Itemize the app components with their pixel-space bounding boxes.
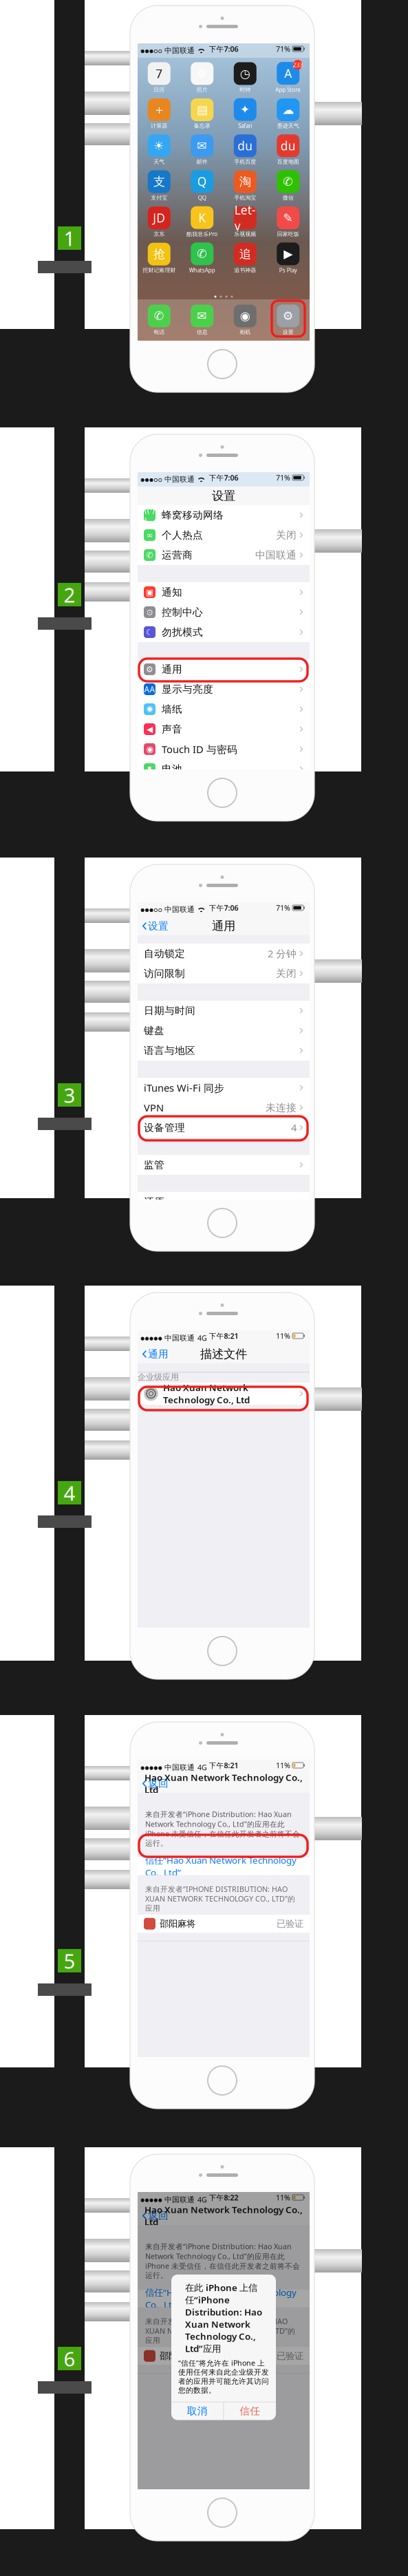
- button[interactable]: 信任“Hao Xuan Network Technology Co., Ltd”: [138, 1857, 310, 1875]
- staticText: 下午8:21: [209, 1331, 238, 1341]
- button[interactable]: JD: [147, 207, 171, 237]
- button[interactable]: ☀: [147, 134, 171, 165]
- button[interactable]: ◉: [138, 739, 310, 759]
- button[interactable]: K: [187, 206, 218, 238]
- staticText: 2 分钟: [268, 947, 297, 960]
- staticText: 蜂窝移动网络: [162, 509, 224, 521]
- button[interactable]: ▤: [190, 98, 215, 129]
- button[interactable]: 监管: [138, 1155, 310, 1175]
- button[interactable]: 设置: [139, 917, 172, 935]
- staticText: 个人热点: [162, 529, 203, 541]
- button[interactable]: ❁: [190, 62, 215, 93]
- button[interactable]: A: [275, 62, 301, 93]
- staticText: ✆: [154, 309, 164, 323]
- button[interactable]: ◉: [233, 305, 257, 335]
- staticText: 下午8:21: [209, 1760, 238, 1770]
- button[interactable]: ☾: [138, 622, 310, 642]
- staticText: 设置: [283, 329, 294, 335]
- button[interactable]: ✆: [189, 242, 215, 274]
- staticText: 电话: [154, 329, 165, 335]
- button[interactable]: 还原: [138, 1192, 310, 1212]
- staticText: 备忘录: [194, 123, 210, 129]
- staticText: 在此 iPhone 上信任“iPhone Distribution: Hao X…: [185, 2281, 262, 2355]
- button[interactable]: ✆: [276, 170, 301, 201]
- button[interactable]: ▮: [138, 759, 310, 779]
- staticText: 信息: [197, 329, 208, 335]
- button[interactable]: 通用: [139, 1345, 172, 1363]
- button[interactable]: 返回: [139, 2206, 172, 2225]
- button[interactable]: ⚙: [138, 659, 310, 679]
- button[interactable]: Hao Xuan Network Technology Co., Ltd: [138, 1383, 310, 1405]
- button[interactable]: Letv: [233, 207, 257, 237]
- button[interactable]: 追: [233, 243, 257, 274]
- button[interactable]: ∞: [138, 525, 310, 545]
- button[interactable]: ✦: [233, 98, 257, 130]
- button[interactable]: ☁: [276, 98, 301, 129]
- button[interactable]: 支: [147, 170, 171, 201]
- staticText: 信任: [240, 2405, 260, 2417]
- button[interactable]: iTunes Wi-Fi 同步: [138, 1078, 310, 1098]
- button[interactable]: Q: [190, 170, 215, 201]
- staticText: Letv: [234, 202, 256, 234]
- staticText: ▣: [146, 588, 153, 597]
- button[interactable]: 返回: [139, 1774, 172, 1793]
- staticText: ⚙: [146, 665, 153, 674]
- button[interactable]: ((·)): [138, 505, 310, 525]
- button[interactable]: ✆: [138, 545, 310, 565]
- staticText: ✆: [283, 175, 293, 188]
- button[interactable]: ▶: [276, 242, 301, 274]
- staticText: 邵阳麻将: [160, 1918, 195, 1929]
- button[interactable]: ✉: [190, 134, 215, 165]
- staticText: 京东: [154, 231, 165, 237]
- staticText: 还原: [144, 1196, 164, 1208]
- button[interactable]: 设备管理: [138, 1118, 310, 1138]
- staticText: ⊙: [146, 607, 153, 617]
- button[interactable]: 信任“Hao Xuan Network Technology Co., Ltd”: [138, 2289, 310, 2307]
- button[interactable]: AA: [138, 679, 310, 699]
- staticText: 3: [64, 1082, 75, 1108]
- button[interactable]: ✎: [276, 207, 301, 237]
- button[interactable]: 键盘: [138, 1021, 310, 1041]
- button[interactable]: ⚙: [276, 305, 301, 335]
- staticText: App Store: [275, 86, 301, 93]
- button[interactable]: ◀: [138, 719, 310, 739]
- staticText: ☾: [146, 627, 153, 637]
- button[interactable]: ▣: [138, 582, 310, 602]
- staticText: 11%: [276, 2193, 290, 2202]
- button[interactable]: 语言与地区: [138, 1041, 310, 1061]
- button[interactable]: 抢: [143, 243, 176, 274]
- staticText: ✺: [146, 705, 153, 714]
- button[interactable]: 淘: [233, 170, 257, 201]
- staticText: 日历: [154, 86, 165, 93]
- staticText: 设置: [148, 920, 169, 932]
- staticText: 追: [239, 247, 251, 261]
- staticText: 通用: [148, 1348, 169, 1360]
- staticText: 企业级应用: [138, 1372, 179, 1382]
- button[interactable]: ✆: [147, 305, 171, 335]
- staticText: 下午7:06: [209, 903, 238, 913]
- button[interactable]: 自动锁定: [138, 944, 310, 964]
- button[interactable]: ◷: [233, 62, 257, 93]
- button[interactable]: du: [233, 134, 257, 165]
- button[interactable]: 日期与时间: [138, 1001, 310, 1021]
- button[interactable]: 信任: [224, 2402, 276, 2420]
- button[interactable]: ✺: [138, 699, 310, 719]
- staticText: 4G: [197, 1763, 207, 1772]
- staticText: 来自开发者“IPHONE DISTRIBUTION: HAO XUAN NETW…: [145, 1884, 295, 1913]
- staticText: ◉: [240, 309, 250, 323]
- staticText: 中国联通: [164, 1763, 195, 1772]
- button[interactable]: VPN: [138, 1098, 310, 1118]
- button[interactable]: 取消: [171, 2402, 223, 2420]
- staticText: 4: [64, 1479, 75, 1506]
- button[interactable]: du: [276, 134, 301, 165]
- staticText: 手机淘宝: [234, 194, 256, 201]
- staticText: ◷: [240, 67, 250, 80]
- button[interactable]: 访问限制: [138, 964, 310, 983]
- staticText: 11%: [276, 1331, 290, 1341]
- button[interactable]: ＋: [147, 98, 171, 129]
- button[interactable]: ✉: [190, 305, 215, 335]
- button[interactable]: ⊙: [138, 602, 310, 622]
- staticText: 中国联通: [164, 46, 195, 55]
- button[interactable]: 7: [147, 62, 171, 93]
- staticText: 语言与地区: [144, 1044, 195, 1057]
